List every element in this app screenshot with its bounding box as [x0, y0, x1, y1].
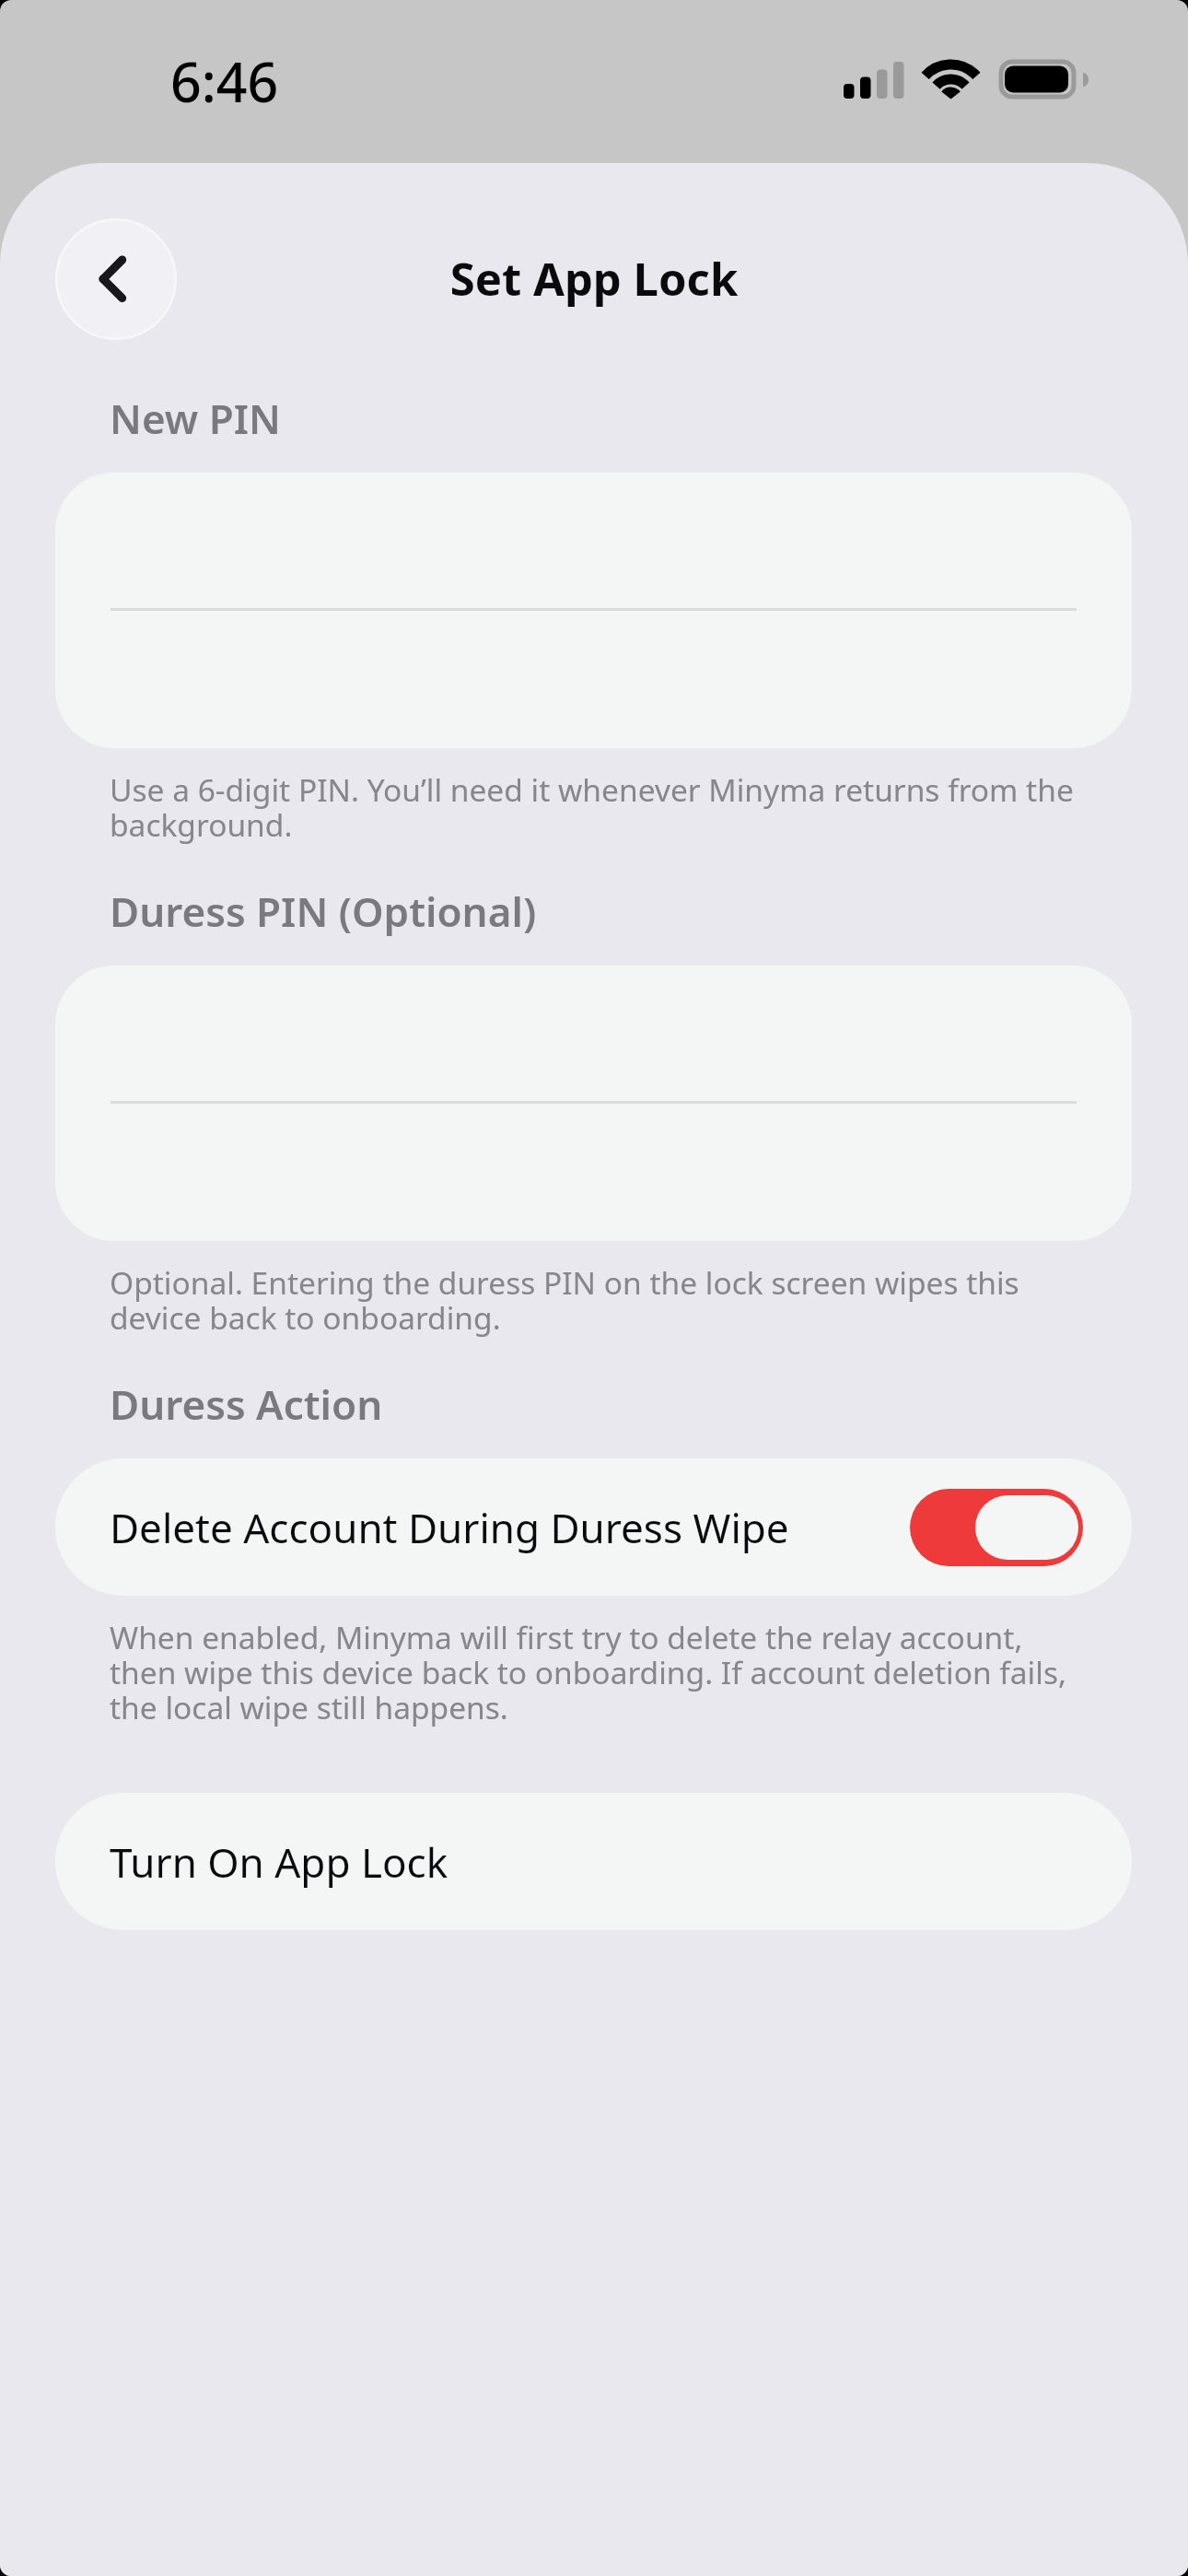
staticText: Turn On App Lock: [110, 1834, 448, 1890]
staticText: 6:46: [170, 44, 279, 118]
staticText: Set App Lock: [0, 248, 1188, 310]
button[interactable]: Turn On App Lock: [55, 1793, 1132, 1930]
staticText: Optional. Entering the duress PIN on the…: [110, 1261, 1082, 1339]
staticText: Delete Account During Duress Wipe: [110, 1500, 789, 1555]
staticText: New PIN: [110, 391, 281, 446]
staticText: Duress Action: [110, 1376, 383, 1432]
button[interactable]: Delete Account During Duress Wipe: [55, 1458, 1132, 1596]
staticText: Duress PIN (Optional): [110, 884, 537, 939]
staticText: When enabled, Minyma will first try to d…: [110, 1616, 1082, 1728]
staticText: Use a 6-digit PIN. You’ll need it whenev…: [110, 768, 1082, 846]
button[interactable]: Back: [55, 218, 177, 340]
